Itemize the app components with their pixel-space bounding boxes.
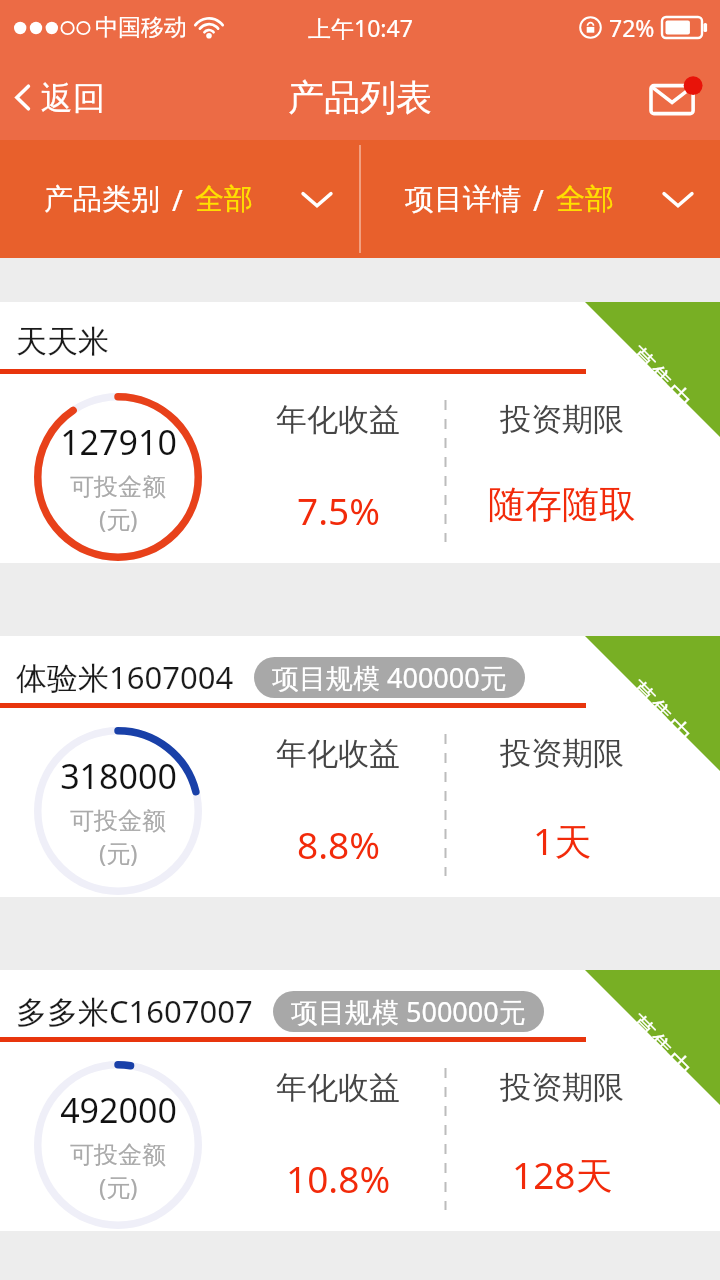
staticText: 募集中 bbox=[620, 340, 698, 419]
staticText: 127910 bbox=[60, 419, 177, 465]
staticText: 天天米 bbox=[16, 322, 109, 361]
button[interactable]: Messages bbox=[630, 55, 720, 140]
staticText: 10.8% bbox=[286, 1153, 391, 1203]
staticText: 募集中 bbox=[620, 1008, 698, 1087]
staticText: 年化收益 bbox=[276, 1068, 400, 1107]
button[interactable]: 项目详情 bbox=[361, 140, 720, 258]
staticText: 返回 bbox=[41, 78, 105, 118]
staticText: 可投金额 bbox=[70, 806, 166, 836]
staticText: 上午10:47 bbox=[308, 12, 413, 43]
staticText: 项目详情 bbox=[405, 181, 521, 218]
staticText: 体验米1607004 bbox=[16, 656, 234, 698]
staticText: (元) bbox=[99, 1170, 138, 1203]
staticText: 投资期限 bbox=[500, 1068, 624, 1107]
staticText: 128天 bbox=[512, 1149, 613, 1200]
staticText: 产品列表 bbox=[288, 75, 432, 120]
staticText: / bbox=[533, 180, 544, 219]
staticText: 8.8% bbox=[297, 819, 380, 869]
staticText: 可投金额 bbox=[70, 472, 166, 502]
button[interactable]: 体验米1607004 bbox=[0, 636, 720, 897]
staticText: 492000 bbox=[60, 1087, 177, 1133]
staticText: (元) bbox=[99, 502, 138, 535]
button[interactable]: 多多米C1607007 bbox=[0, 970, 720, 1231]
button[interactable]: 产品类别 bbox=[0, 140, 359, 258]
staticText: 全部 bbox=[556, 181, 614, 218]
staticText: 1天 bbox=[533, 815, 592, 866]
staticText: 可投金额 bbox=[70, 1140, 166, 1170]
staticText: 投资期限 bbox=[500, 734, 624, 773]
button[interactable]: 天天米 bbox=[0, 302, 720, 563]
staticText: 318000 bbox=[60, 753, 177, 799]
staticText: 72% bbox=[609, 12, 655, 43]
staticText: 全部 bbox=[195, 181, 253, 218]
staticText: 7.5% bbox=[297, 485, 380, 535]
staticText: 中国移动 bbox=[95, 13, 187, 42]
staticText: 项目规模 400000元 bbox=[272, 659, 507, 696]
staticText: 年化收益 bbox=[276, 734, 400, 773]
staticText: 多多米C1607007 bbox=[16, 990, 253, 1032]
button[interactable]: 返回 bbox=[0, 55, 125, 140]
staticText: 随存随取 bbox=[488, 481, 636, 528]
staticText: 项目规模 500000元 bbox=[291, 993, 526, 1030]
staticText: 产品类别 bbox=[44, 181, 160, 218]
staticText: 募集中 bbox=[620, 674, 698, 753]
staticText: / bbox=[172, 180, 183, 219]
staticText: 年化收益 bbox=[276, 400, 400, 439]
staticText: (元) bbox=[99, 836, 138, 869]
staticText: 投资期限 bbox=[500, 400, 624, 439]
